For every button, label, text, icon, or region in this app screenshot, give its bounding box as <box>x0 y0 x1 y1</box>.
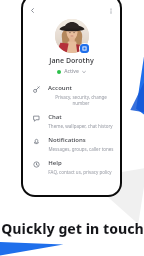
button[interactable]: Account <box>23 84 120 106</box>
staticText: Quickly get in touch <box>1 219 144 238</box>
button[interactable]: Active <box>23 68 120 75</box>
staticText: FAQ, contact us, privacy policy <box>48 169 112 175</box>
button[interactable]: Profile photo <box>55 19 89 53</box>
staticText: Active <box>64 68 79 75</box>
staticText: Help <box>48 159 62 167</box>
staticText: Chat <box>48 113 62 121</box>
button[interactable]: Help <box>23 159 120 175</box>
staticText: Account <box>48 84 72 92</box>
staticText: Privacy, security, change number <box>48 94 114 106</box>
button[interactable]: Chat <box>23 113 120 129</box>
button[interactable]: Back <box>28 6 37 15</box>
staticText: Theme, wallpaper, chat history <box>48 123 113 129</box>
button[interactable]: Notifications <box>23 136 120 152</box>
button[interactable]: Edit profile <box>80 44 89 53</box>
staticText: Messages, groups, caller tones <box>48 146 114 152</box>
button[interactable]: More options <box>106 6 115 15</box>
staticText: Jane Dorothy <box>49 56 94 66</box>
staticText: Notifications <box>48 136 86 144</box>
